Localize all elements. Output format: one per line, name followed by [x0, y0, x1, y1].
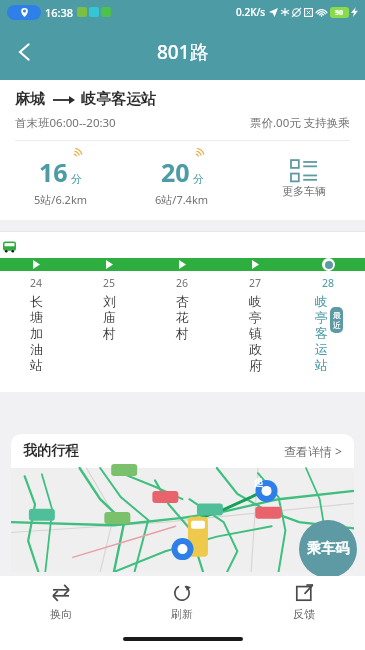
staticText: 乘车码 [307, 540, 349, 558]
button[interactable]: 查看详情 [284, 443, 342, 459]
staticText: 村 [103, 325, 116, 341]
staticText: 花 [176, 309, 189, 325]
staticText: 岐 [315, 293, 328, 309]
staticText: 亭 [249, 309, 262, 325]
staticText: 更多车辆 [282, 184, 326, 198]
staticText: 分 [71, 172, 82, 186]
staticText: 村 [176, 325, 189, 341]
staticText: 5站/6.2km [34, 192, 88, 207]
button[interactable]: 24 [0, 276, 73, 373]
staticText: 起 [254, 477, 263, 488]
staticText: 刘 [103, 293, 116, 309]
staticText: 反馈 [293, 607, 315, 621]
staticText: 16 [39, 155, 68, 189]
button[interactable]: 反馈 [243, 576, 365, 628]
staticText: 27 [249, 276, 262, 290]
staticText: 20 [161, 155, 190, 189]
staticText: > [335, 443, 342, 459]
staticText: 运 [315, 341, 328, 357]
button[interactable]: 乘车码 [299, 520, 357, 578]
button[interactable]: Back [0, 28, 48, 76]
staticText: 庙 [103, 309, 116, 325]
staticText: 塘 [30, 309, 43, 325]
staticText: 25 [103, 276, 116, 290]
button[interactable]: 更多车辆 [243, 155, 365, 198]
button[interactable]: 25 [73, 276, 146, 341]
staticText: 亭 [315, 309, 328, 325]
staticText: 票价.00元 支持换乘 [250, 115, 350, 131]
staticText: 24 [30, 276, 43, 290]
button[interactable]: 26 [146, 276, 219, 341]
staticText: 加 [30, 325, 43, 341]
staticText: 岐 [249, 293, 262, 309]
staticText: 26 [176, 276, 189, 290]
staticText: 我的行程 [23, 442, 79, 460]
staticText: 杏 [176, 293, 189, 309]
staticText: 28 [322, 276, 335, 290]
button[interactable]: 27 [219, 276, 292, 373]
staticText: 0.2K/s [236, 5, 266, 19]
staticText: 客 [315, 325, 328, 341]
staticText: 站 [315, 357, 328, 373]
button[interactable]: 刷新 [121, 576, 243, 628]
staticText: 府 [249, 357, 262, 373]
staticText: 政 [249, 341, 262, 357]
staticText: 16:38 [45, 5, 74, 20]
staticText: 6站/7.4km [155, 192, 209, 207]
button[interactable]: 20 [121, 155, 243, 207]
staticText: 油 [30, 341, 43, 357]
button[interactable]: 16 [0, 155, 121, 207]
staticText: 90 [335, 8, 344, 18]
staticText: 最 [333, 310, 341, 320]
staticText: 麻城 [15, 90, 45, 109]
staticText: 查看详情 [284, 444, 332, 459]
staticText: 801路 [157, 39, 209, 65]
staticText: 岐亭客运站 [81, 90, 156, 109]
staticText: 换向 [50, 607, 72, 621]
staticText: 分 [193, 172, 204, 186]
staticText: 近 [333, 320, 341, 330]
button[interactable]: 换向 [0, 576, 121, 628]
staticText: 站 [30, 357, 43, 373]
staticText: 首末班06:00--20:30 [15, 115, 116, 131]
button[interactable]: 28 [292, 276, 365, 373]
staticText: 刷新 [171, 607, 193, 621]
staticText: 长 [30, 293, 43, 309]
staticText: 镇 [249, 325, 262, 341]
